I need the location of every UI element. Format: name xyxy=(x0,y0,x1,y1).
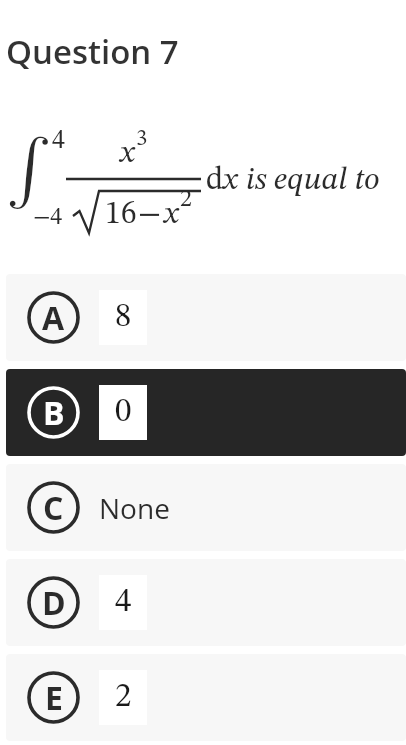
button[interactable]: E xyxy=(6,654,406,741)
staticText: x xyxy=(120,138,135,170)
staticText: is equal to xyxy=(246,165,380,197)
staticText: x xyxy=(164,199,179,231)
staticText: ∫ xyxy=(6,137,53,202)
staticText: 3 xyxy=(136,127,148,150)
staticText: 4 xyxy=(115,586,132,619)
staticText: D xyxy=(42,581,66,625)
button[interactable]: C xyxy=(6,464,406,551)
staticText: 0 xyxy=(115,396,132,429)
staticText: − xyxy=(138,199,162,231)
button[interactable]: D xyxy=(6,559,406,646)
staticText: A xyxy=(42,296,65,340)
staticText: C xyxy=(43,486,64,530)
button[interactable]: A xyxy=(6,274,406,361)
staticText: 2 xyxy=(180,188,192,212)
staticText: −4 xyxy=(33,206,63,230)
button[interactable]: B xyxy=(6,369,406,456)
staticText: 2 xyxy=(115,681,132,714)
staticText: Question 7 xyxy=(6,29,179,74)
staticText: B xyxy=(43,391,65,435)
staticText: None xyxy=(99,489,170,527)
staticText: 4 xyxy=(52,128,65,154)
staticText: x xyxy=(223,165,238,197)
staticText: d xyxy=(206,165,224,197)
staticText: E xyxy=(45,676,63,720)
staticText: 8 xyxy=(115,301,132,334)
staticText: 16 xyxy=(105,199,137,231)
